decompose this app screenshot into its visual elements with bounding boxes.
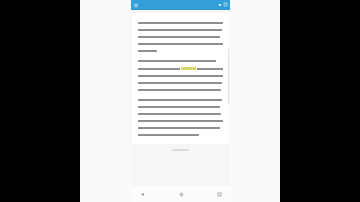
button[interactable]: Back xyxy=(137,189,147,199)
button[interactable]: Bookmark xyxy=(217,2,222,7)
button[interactable]: Menu xyxy=(133,2,139,8)
button[interactable]: Home xyxy=(176,189,186,199)
button[interactable]: More options xyxy=(223,2,228,7)
button[interactable] xyxy=(132,13,229,144)
button[interactable]: Recent apps xyxy=(214,189,224,199)
